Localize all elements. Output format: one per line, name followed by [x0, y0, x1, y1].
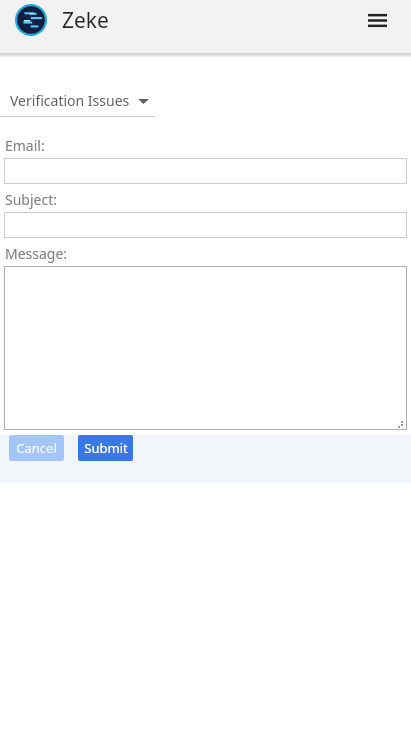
staticText: Subject: [5, 190, 57, 209]
button[interactable]: Verification Issues [0, 91, 155, 117]
button[interactable]: Cancel [9, 435, 64, 461]
button[interactable]: Menu [357, 0, 397, 40]
staticText: Verification Issues [10, 91, 130, 110]
button[interactable] [4, 212, 407, 238]
button[interactable] [4, 158, 407, 184]
staticText: Cancel [16, 439, 57, 457]
staticText: Zeke [62, 6, 109, 35]
staticText: Submit [84, 439, 128, 457]
button[interactable] [4, 266, 407, 430]
staticText: Email: [5, 136, 45, 155]
button[interactable]: Submit [78, 435, 133, 461]
staticText: Message: [5, 244, 68, 263]
